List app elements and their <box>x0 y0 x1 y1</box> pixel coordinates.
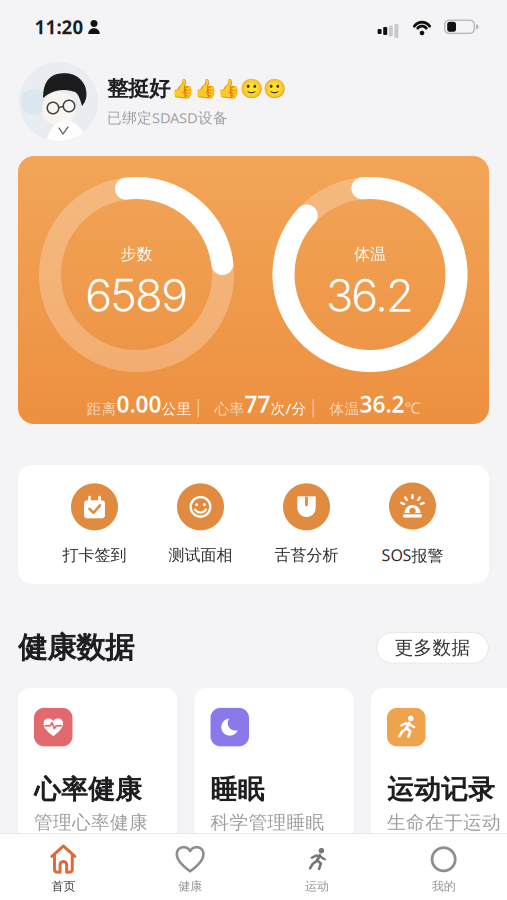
button[interactable]: 更多数据 <box>376 632 489 664</box>
button[interactable]: 首页 <box>0 838 127 893</box>
staticText: 36.2 <box>326 268 414 323</box>
staticText: 36.2 <box>359 389 404 419</box>
staticText: 距离 <box>86 400 116 418</box>
staticText: 打卡签到 <box>62 545 126 565</box>
staticText: 已绑定SDASD设备 <box>107 108 228 127</box>
button[interactable]: 睡眠 <box>194 688 353 851</box>
button[interactable]: 运动记录 <box>371 688 507 851</box>
staticText: 生命在于运动 <box>387 811 501 834</box>
button[interactable]: 打卡签到 <box>41 483 147 565</box>
staticText: 体温 <box>354 244 386 264</box>
button[interactable]: 健康 <box>127 838 254 893</box>
staticText: 0.00 <box>116 389 161 419</box>
staticText: 睡眠 <box>210 773 264 806</box>
staticText: 运动记录 <box>387 773 495 806</box>
button[interactable]: 测试面相 <box>147 483 253 565</box>
staticText: SOS报警 <box>381 544 443 566</box>
staticText: 健康数据 <box>18 630 134 666</box>
staticText: ℃ <box>404 397 420 418</box>
button[interactable]: 心率健康 <box>18 688 177 851</box>
staticText: | <box>308 395 318 418</box>
staticText: | <box>193 395 203 418</box>
button[interactable]: 运动 <box>253 838 380 893</box>
staticText: 健康 <box>178 879 202 893</box>
staticText: 步数 <box>120 244 152 264</box>
staticText: 更多数据 <box>394 636 470 659</box>
staticText: 体温 <box>329 400 359 418</box>
staticText: 舌苔分析 <box>274 545 338 565</box>
staticText: 首页 <box>51 879 75 893</box>
staticText: 👍👍👍🙂🙂 <box>171 78 286 99</box>
staticText: 次/分 <box>270 399 306 418</box>
staticText: 心率 <box>214 400 244 418</box>
staticText: 77 <box>244 389 270 419</box>
button[interactable]: 我的 <box>380 838 507 893</box>
button[interactable]: SOS报警 <box>359 482 465 566</box>
staticText: 11:20 <box>34 15 83 39</box>
staticText: 公里 <box>161 400 191 418</box>
staticText: 整挺好 <box>107 76 170 102</box>
staticText: 心率健康 <box>34 773 142 806</box>
staticText: 科学管理睡眠 <box>210 811 324 834</box>
staticText: 我的 <box>432 879 456 893</box>
staticText: 6589 <box>85 268 188 323</box>
staticText: 管理心率健康 <box>34 811 148 834</box>
button[interactable]: 舌苔分析 <box>253 483 359 565</box>
staticText: 运动 <box>305 879 329 893</box>
staticText: 测试面相 <box>168 545 232 565</box>
